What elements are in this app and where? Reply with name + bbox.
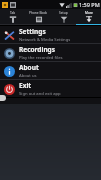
staticText: Sign out and exit app — [19, 91, 61, 97]
button[interactable]: About — [0, 62, 101, 79]
button[interactable]: Setup — [51, 9, 76, 24]
button[interactable]: More — [76, 9, 101, 24]
staticText: Phone Book — [29, 11, 48, 15]
staticText: About us — [19, 73, 37, 79]
staticText: Exit — [19, 81, 32, 90]
button[interactable]: Exit — [0, 80, 101, 97]
staticText: Network & Media Settings — [19, 37, 71, 43]
button[interactable]: Phone Book — [26, 9, 51, 24]
button[interactable]: Settings — [0, 26, 101, 43]
staticText: Recordings — [19, 45, 55, 54]
staticText: Play the recorded files — [19, 55, 63, 61]
staticText: Tab — [10, 11, 16, 15]
staticText: 1:59 PM — [79, 1, 100, 8]
staticText: Setup — [59, 11, 68, 15]
button[interactable]: Recordings — [0, 44, 101, 61]
button[interactable]: Tab — [0, 9, 26, 24]
staticText: About — [19, 63, 39, 72]
staticText: Settings — [19, 27, 46, 36]
staticText: More — [85, 11, 93, 15]
